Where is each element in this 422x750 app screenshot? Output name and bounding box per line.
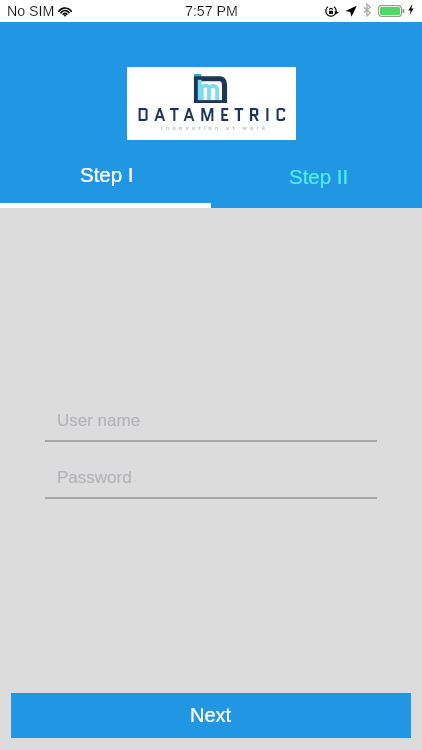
staticText: Password (57, 468, 132, 487)
button[interactable]: Password (45, 467, 377, 499)
staticText: innovation at work (161, 124, 269, 133)
staticText: DATAMETRIC (137, 103, 292, 127)
button[interactable]: Step II (211, 150, 422, 207)
staticText: Step II (289, 165, 349, 188)
staticText: User name (57, 411, 141, 430)
staticText: Step I (80, 163, 134, 186)
staticText: Next (190, 704, 232, 726)
staticText: 7:57 PM (185, 3, 238, 19)
button[interactable]: User name (45, 410, 377, 442)
button[interactable]: Next (11, 693, 411, 738)
button[interactable]: Step I (0, 150, 211, 207)
staticText: No SIM (7, 3, 55, 19)
